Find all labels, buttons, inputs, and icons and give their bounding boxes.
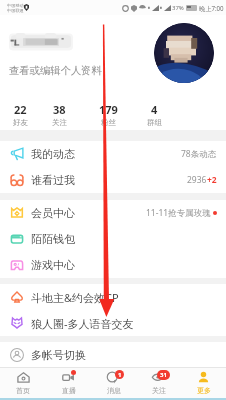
button[interactable]: 更多 (181, 368, 226, 398)
staticText: 1 (118, 371, 122, 379)
staticText: 22 (14, 102, 27, 117)
staticText: 关注 (52, 118, 67, 127)
button[interactable]: 31 (136, 368, 181, 398)
staticText: 31 (160, 371, 167, 379)
button[interactable]: 38 (38, 99, 80, 130)
button[interactable]: 4 (133, 99, 175, 130)
staticText: 78条动态 (181, 148, 217, 160)
staticText: 消息 (107, 386, 121, 395)
staticText: 我的动态 (31, 147, 75, 161)
staticText: 会员中心 (31, 206, 75, 220)
staticText: 斗地主&约会效CP (31, 290, 119, 305)
staticText: 陌陌钱包 (31, 232, 75, 246)
staticText: 关注 (152, 386, 166, 395)
staticText: 群组 (147, 118, 162, 127)
button[interactable]: 斗地主&约会效CP (0, 284, 226, 310)
button[interactable]: 1 (91, 368, 136, 398)
button[interactable]: 179 (87, 99, 129, 130)
staticText: 中国移动 (7, 3, 24, 8)
staticText: 好友 (13, 118, 28, 127)
staticText: 4 (151, 102, 158, 117)
staticText: 2936 (187, 174, 207, 186)
button[interactable]: 直播 (46, 368, 91, 398)
button[interactable]: 首页 (0, 368, 46, 398)
button[interactable]: 查看或编辑个人资料 (9, 64, 102, 77)
staticText: 多帐号切换 (31, 348, 86, 362)
staticText: 中国联通 (7, 8, 24, 13)
staticText: 直播 (62, 386, 76, 395)
button[interactable]: 多帐号切换 (0, 342, 226, 368)
staticText: 粉丝 (101, 118, 116, 127)
button[interactable]: 陌陌钱包 (0, 226, 226, 252)
button[interactable]: 个人头像 (154, 23, 214, 83)
button[interactable]: 会员中心 (0, 200, 226, 226)
button[interactable]: 谁看过我 (0, 167, 226, 193)
button[interactable]: 我的动态 (0, 141, 226, 167)
staticText: 38 (53, 102, 66, 117)
staticText: 更多 (197, 386, 211, 395)
button[interactable]: 22 (0, 99, 41, 130)
staticText: 11-11抢专属玫瑰 (146, 207, 211, 219)
staticText: +2 (207, 174, 217, 186)
staticText: 37% (172, 4, 184, 12)
staticText: 游戏中心 (31, 258, 75, 272)
button[interactable]: 游戏中心 (0, 252, 226, 278)
staticText: 狼人圈-多人语音交友 (31, 316, 134, 331)
staticText: 首页 (16, 386, 30, 395)
button[interactable]: 狼人圈-多人语音交友 (0, 310, 226, 336)
staticText: 179 (99, 102, 118, 117)
staticText: 晚上7:00 (199, 4, 224, 12)
staticText: 谁看过我 (31, 173, 75, 187)
